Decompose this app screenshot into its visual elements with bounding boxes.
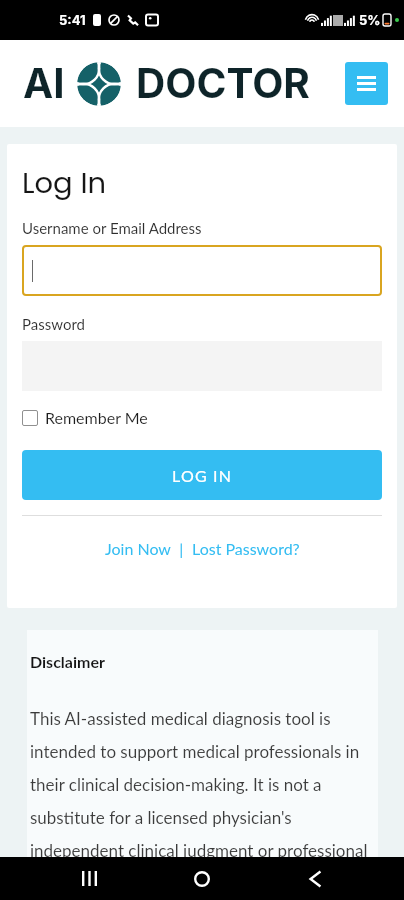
staticText: | [171, 539, 192, 558]
staticText: DOCTOR [136, 59, 310, 108]
staticText: LOG IN [172, 466, 233, 485]
staticText: Username or Email Address [22, 219, 202, 237]
staticText: 5% [359, 12, 381, 28]
button[interactable]: Back [291, 857, 339, 900]
button[interactable]: Remember Me [22, 408, 148, 427]
staticText: Disclaimer [30, 652, 105, 671]
staticText: Log In [22, 163, 107, 204]
button[interactable]: Lost Password? [192, 539, 300, 558]
staticText: This AI-assisted medical diagnosis tool … [30, 708, 371, 857]
button[interactable]: Open navigation menu [345, 62, 388, 105]
button[interactable]: Join Now [105, 539, 171, 558]
button[interactable]: Recent apps [65, 857, 113, 900]
button[interactable] [22, 245, 382, 296]
button[interactable]: Home [178, 857, 226, 900]
button[interactable]: LOG IN [22, 450, 382, 500]
staticText: 5:41 [59, 12, 86, 28]
staticText: Password [22, 315, 85, 333]
staticText: Remember Me [45, 408, 148, 427]
staticText: AI [23, 59, 65, 108]
